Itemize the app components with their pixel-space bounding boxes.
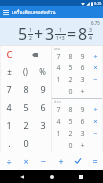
button[interactable]: 9 [76, 51, 89, 62]
button[interactable]: 8 [17, 80, 34, 98]
button[interactable]: 6 [76, 116, 89, 128]
button[interactable]: 1 [52, 74, 64, 86]
button[interactable]: × [89, 116, 102, 128]
staticText: 6.75 [91, 20, 100, 26]
button[interactable]: () [17, 63, 34, 80]
button[interactable]: 3 [76, 74, 89, 86]
staticText: 5 [18, 23, 28, 45]
staticText: 2 [29, 35, 32, 42]
staticText: − [93, 75, 98, 85]
button[interactable]: Recents [75, 171, 87, 183]
button[interactable]: 6 [76, 62, 89, 74]
button[interactable]: 7 [52, 104, 64, 116]
button[interactable]: × [89, 62, 102, 74]
button[interactable]: + [76, 140, 89, 152]
staticText: ÷ [93, 52, 98, 62]
button[interactable]: 0 [64, 140, 76, 152]
button[interactable]: 5 [17, 98, 34, 116]
staticText: 1 [56, 129, 61, 139]
button[interactable]: Back [16, 171, 28, 183]
staticText: 2 [68, 75, 73, 85]
button[interactable]: 9 [76, 104, 89, 116]
staticText: + [58, 155, 64, 167]
button[interactable]: 3 [76, 128, 89, 140]
staticText: 5 [23, 101, 29, 113]
button[interactable]: Confirm [69, 152, 86, 170]
staticText: + [80, 141, 85, 151]
staticText: 3 [40, 119, 46, 131]
button[interactable]: . [1, 134, 17, 152]
staticText: C [6, 48, 13, 61]
staticText: 1 [6, 119, 12, 131]
staticText: 1 [29, 27, 32, 34]
staticText: 4 [56, 117, 61, 127]
button[interactable]: 0 [64, 86, 76, 98]
staticText: 3 [89, 27, 92, 34]
staticText: เศษ [54, 46, 60, 51]
button[interactable]: ± [1, 63, 17, 80]
staticText: 4 [56, 63, 61, 73]
button[interactable]: − [89, 74, 102, 86]
button[interactable]: 4 [52, 62, 64, 74]
button[interactable]: Home [46, 171, 58, 183]
button[interactable]: 5 [64, 116, 76, 128]
button[interactable]: 7 [52, 51, 64, 62]
staticText: 9 [80, 52, 85, 62]
button[interactable]: − [34, 152, 52, 170]
staticText: 3 [80, 129, 85, 139]
button[interactable]: 0 [17, 134, 34, 152]
button[interactable]: 1 [1, 116, 17, 134]
button[interactable]: 1 [52, 128, 64, 140]
button[interactable]: % [34, 63, 51, 80]
staticText: 1+3 [56, 35, 65, 42]
button[interactable]: 9 [34, 80, 51, 98]
staticText: 0 [23, 137, 29, 149]
button[interactable]: 5 [64, 62, 76, 74]
button[interactable]: + [76, 86, 89, 98]
button[interactable]: ÷ [89, 51, 102, 62]
button[interactable]: Menu [0, 6, 12, 18]
staticText: 0 [68, 141, 73, 151]
staticText: 3 [80, 75, 85, 85]
button[interactable]: 3 [34, 116, 51, 134]
staticText: 5 [68, 63, 73, 73]
button[interactable]: ÷ [89, 104, 102, 116]
button[interactable]: 8 [64, 104, 76, 116]
staticText: 8 [68, 52, 73, 62]
staticText: 4 [6, 101, 12, 113]
staticText: 7 [56, 52, 61, 62]
staticText: × [93, 117, 98, 127]
button[interactable]: = [86, 152, 103, 170]
button[interactable]: 2 [64, 74, 76, 86]
staticText: 3 [45, 23, 55, 45]
staticText: . [8, 137, 11, 149]
button[interactable]: C [1, 46, 18, 63]
staticText: 8 [78, 23, 88, 45]
staticText: 1 [59, 27, 62, 34]
staticText: − [40, 155, 46, 167]
button[interactable]: 7 [1, 80, 17, 98]
button[interactable]: ÷ [0, 152, 17, 170]
staticText: 7 [56, 105, 61, 115]
staticText: 7 [6, 83, 12, 95]
button[interactable]: + [52, 152, 69, 170]
button[interactable]: 2 [64, 128, 76, 140]
button[interactable]: 6 [34, 98, 51, 116]
button[interactable]: Backspace [18, 46, 51, 63]
staticText: 5 [68, 117, 73, 127]
staticText: 2 [68, 129, 73, 139]
button[interactable]: × [17, 152, 34, 170]
staticText: 6 [80, 63, 85, 73]
staticText: () [23, 66, 28, 77]
button[interactable]: 8 [64, 51, 76, 62]
button[interactable]: 2 [17, 116, 34, 134]
button[interactable]: − [89, 128, 102, 140]
button[interactable]: 4 [52, 116, 64, 128]
button[interactable]: 4 [1, 98, 17, 116]
staticText: 6 [40, 101, 46, 113]
